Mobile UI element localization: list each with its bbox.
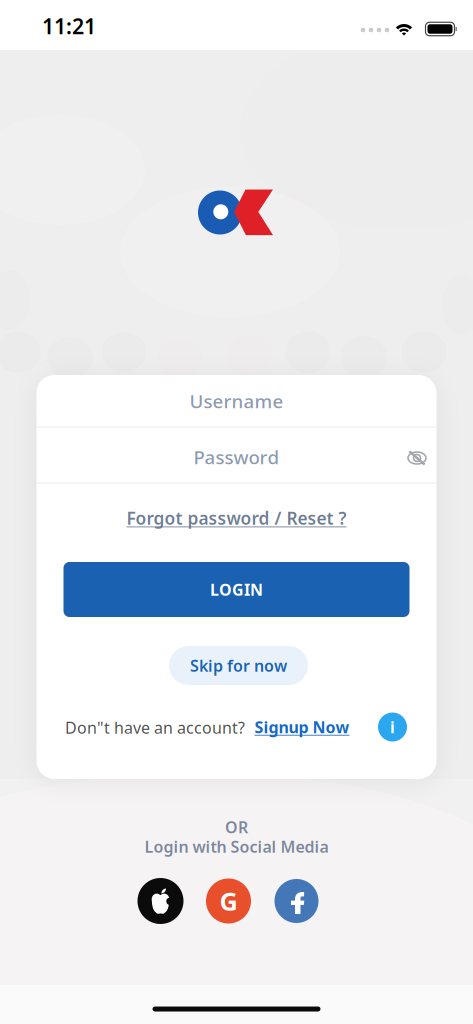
- staticText: Skip for now: [190, 655, 287, 676]
- staticText: Don"t have an account?: [65, 717, 245, 738]
- button[interactable]: Skip for now: [169, 646, 308, 685]
- staticText: OR: [225, 816, 248, 838]
- staticText: G: [219, 884, 237, 918]
- button[interactable]: LOGIN: [63, 562, 409, 617]
- staticText: Username: [189, 389, 283, 413]
- staticText: Password: [193, 445, 279, 469]
- button[interactable]: Info: [378, 712, 407, 741]
- button[interactable]: Show password: [406, 447, 428, 469]
- button[interactable]: Login with Apple: [137, 878, 183, 924]
- staticText: Forgot password / Reset ?: [126, 506, 346, 529]
- button[interactable]: Login with Facebook: [274, 879, 318, 923]
- staticText: i: [390, 716, 395, 738]
- button[interactable]: Username: [36, 376, 436, 426]
- button[interactable]: Password: [36, 430, 436, 484]
- button[interactable]: Login with Google: [206, 878, 251, 923]
- staticText: Login with Social Media: [144, 836, 328, 857]
- staticText: Signup Now: [254, 716, 349, 738]
- button[interactable]: Forgot password / Reset ?: [118, 500, 354, 535]
- staticText: 11:21: [42, 12, 96, 40]
- staticText: LOGIN: [210, 579, 263, 600]
- button[interactable]: Signup Now: [250, 712, 353, 742]
